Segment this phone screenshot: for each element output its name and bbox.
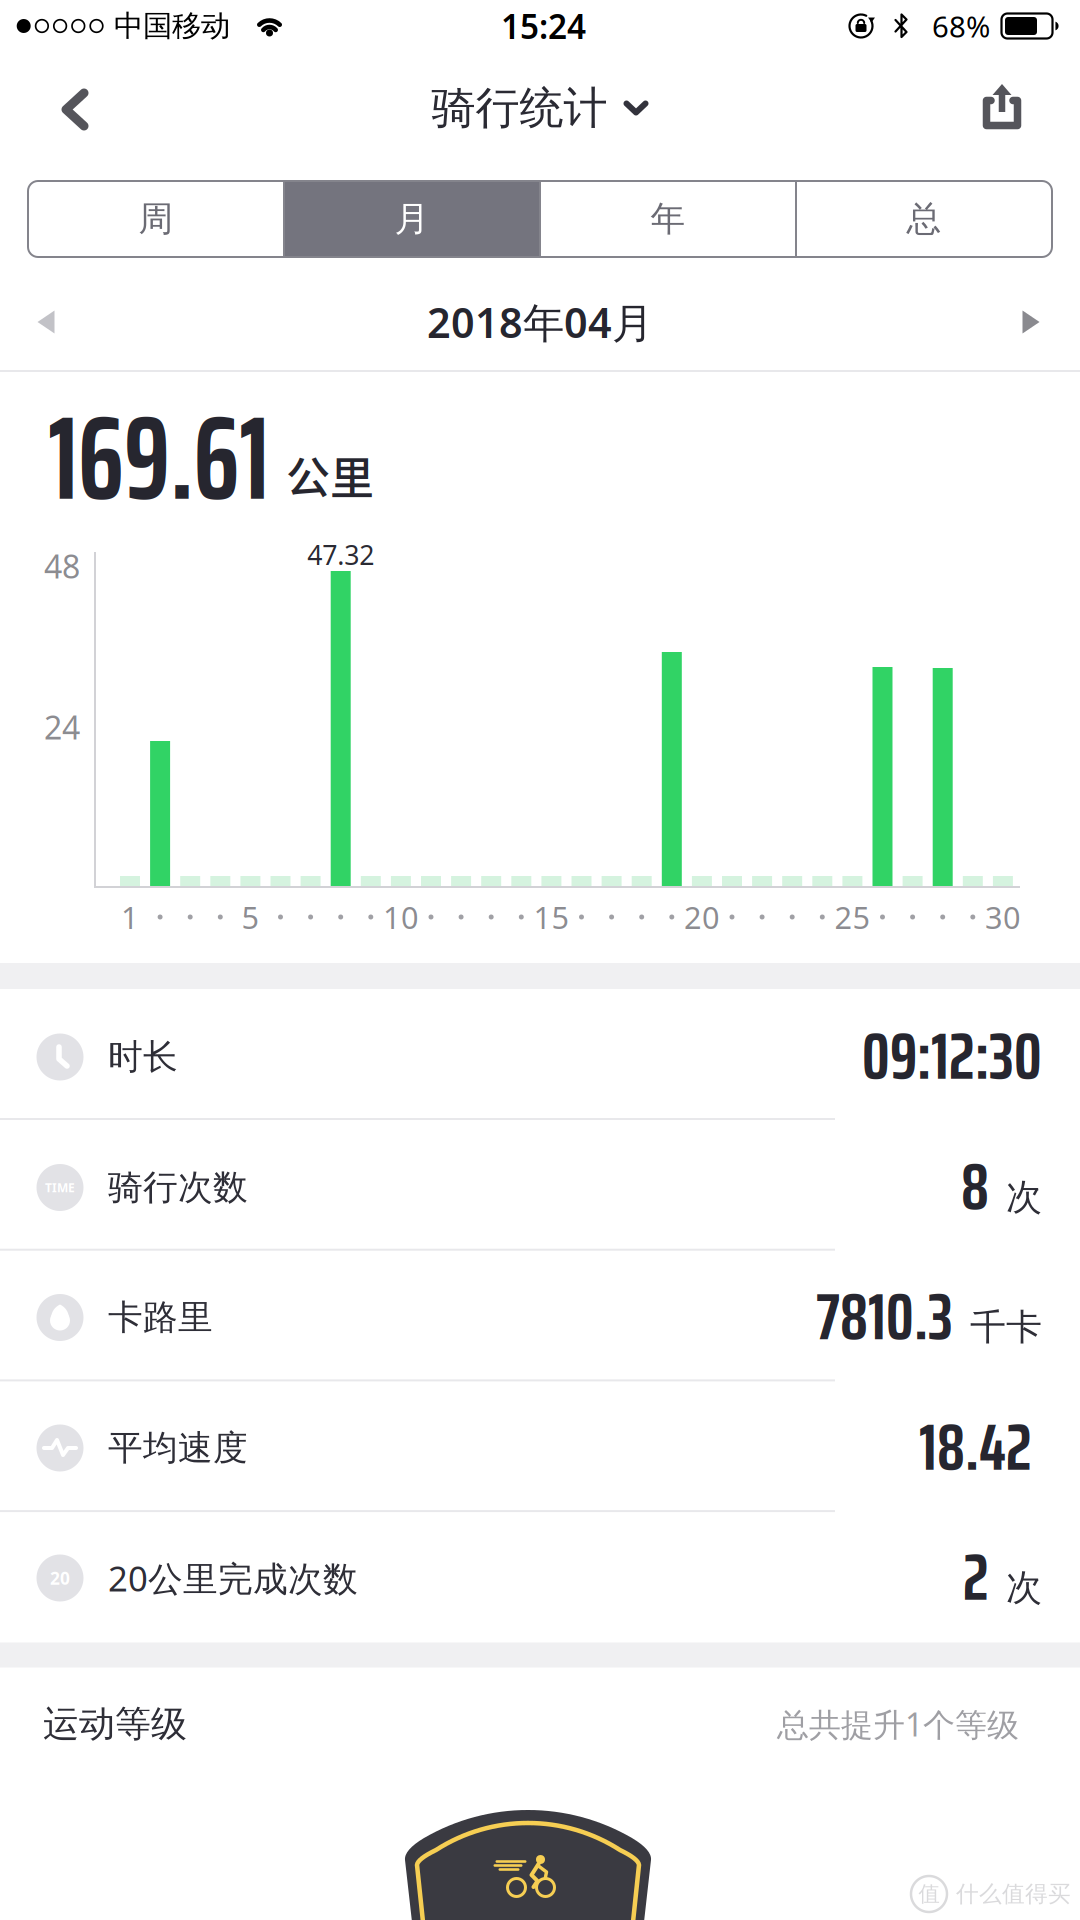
staticText: 月: [394, 198, 429, 240]
staticText: 时长: [108, 1036, 178, 1078]
staticText: 25: [834, 897, 870, 937]
staticText: 中国移动: [114, 8, 230, 44]
staticText: 47.32: [307, 537, 374, 572]
button[interactable]: 时长: [0, 992, 1080, 1122]
button[interactable]: 平均速度: [0, 1383, 1080, 1513]
button[interactable]: 周: [31, 181, 281, 257]
staticText: 2: [963, 1526, 989, 1628]
button[interactable]: Next month: [1022, 310, 1039, 333]
button[interactable]: 总: [799, 181, 1049, 257]
button[interactable]: TIME: [0, 1122, 1080, 1252]
staticText: 8: [961, 1135, 989, 1238]
staticText: 20公里完成次数: [108, 1555, 358, 1601]
button[interactable]: 月: [287, 181, 537, 257]
staticText: 什么值得买: [956, 1880, 1071, 1908]
staticText: 平均速度: [108, 1427, 248, 1469]
staticText: 周: [138, 198, 173, 240]
staticText: 1: [121, 897, 139, 937]
staticText: 骑行统计: [431, 81, 607, 135]
staticText: 20: [684, 897, 720, 937]
button[interactable]: Share: [975, 84, 1029, 130]
staticText: 10: [383, 897, 419, 937]
button[interactable]: 20: [0, 1513, 1080, 1643]
staticText: 年: [650, 198, 685, 240]
staticText: 7810.3: [816, 1265, 953, 1368]
staticText: 值: [918, 1881, 939, 1907]
staticText: 公里: [286, 443, 374, 507]
staticText: 68%: [932, 6, 990, 45]
button[interactable]: 年: [543, 181, 793, 257]
staticText: 2018年04月: [427, 295, 653, 349]
staticText: 20: [50, 1566, 70, 1589]
staticText: 169.61: [48, 366, 284, 550]
staticText: 30: [985, 897, 1021, 937]
staticText: 千卡: [970, 1305, 1042, 1349]
staticText: 18.42: [919, 1396, 1032, 1498]
staticText: 总: [906, 198, 941, 240]
staticText: 次: [1006, 1175, 1042, 1219]
staticText: 卡路里: [108, 1296, 213, 1339]
staticText: 运动等级: [43, 1702, 187, 1746]
button[interactable]: Previous month: [37, 310, 54, 333]
staticText: 15: [533, 897, 569, 937]
staticText: 总共提升1个等级: [777, 1703, 1019, 1745]
staticText: 48: [44, 545, 80, 587]
staticText: 09:12:30: [862, 1005, 1042, 1107]
button[interactable]: 骑行统计: [431, 81, 648, 135]
button[interactable]: Back: [54, 81, 98, 137]
staticText: 15:24: [501, 4, 586, 48]
staticText: 骑行次数: [108, 1166, 248, 1209]
staticText: 5: [241, 897, 259, 937]
button[interactable]: 卡路里: [0, 1252, 1080, 1382]
staticText: 次: [1006, 1566, 1042, 1610]
staticText: 24: [44, 706, 80, 748]
staticText: TIME: [45, 1179, 75, 1195]
